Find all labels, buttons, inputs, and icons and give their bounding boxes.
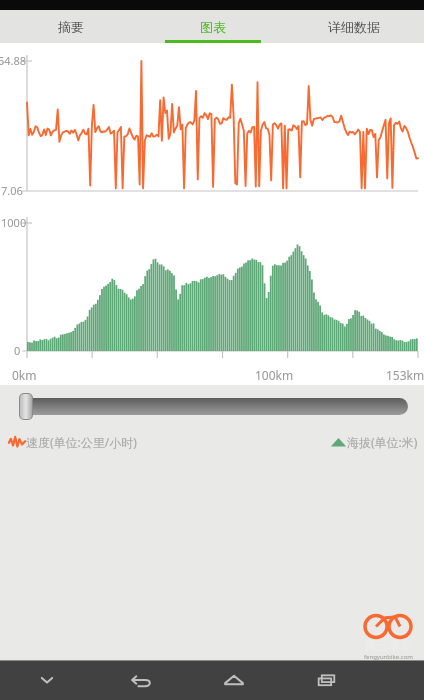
button[interactable]: Scrub position bbox=[22, 398, 408, 415]
staticText: 7.06 bbox=[1, 183, 23, 198]
button[interactable]: Home bbox=[187, 660, 280, 700]
staticText: 54.88 bbox=[0, 53, 27, 68]
staticText: 0 bbox=[14, 343, 21, 358]
staticText: fengyunbike.com bbox=[364, 653, 413, 660]
staticText: 详细数据 bbox=[328, 19, 380, 35]
staticText: 速度(单位:公里/小时) bbox=[26, 434, 137, 450]
button[interactable]: 速度(单位:公里/小时) bbox=[8, 434, 137, 450]
staticText: 海拔(单位:米) bbox=[347, 434, 418, 450]
button[interactable]: Recents bbox=[280, 660, 373, 700]
staticText: 153km bbox=[386, 367, 424, 383]
staticText: 1000 bbox=[1, 215, 27, 230]
button[interactable]: 详细数据 bbox=[283, 10, 424, 43]
button[interactable]: 图表 bbox=[142, 10, 283, 43]
button[interactable]: 海拔(单位:米) bbox=[330, 434, 418, 450]
button[interactable]: Slider handle bbox=[20, 394, 32, 419]
staticText: 100km bbox=[255, 367, 294, 383]
button[interactable]: Back bbox=[94, 660, 187, 700]
staticText: 0km bbox=[12, 367, 37, 383]
button[interactable]: Hide keyboard bbox=[0, 660, 94, 700]
button[interactable]: 摘要 bbox=[0, 10, 142, 43]
staticText: 图表 bbox=[200, 19, 226, 35]
staticText: 风云单车 bbox=[364, 638, 412, 653]
staticText: 摘要 bbox=[58, 19, 84, 35]
